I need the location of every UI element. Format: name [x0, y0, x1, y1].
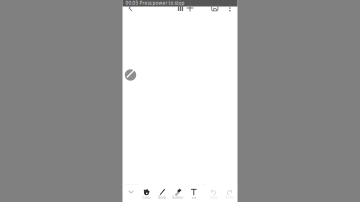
- staticText: Redo: [225, 196, 233, 199]
- button[interactable]: Undo: [206, 183, 221, 201]
- staticText: Undo: [209, 196, 217, 199]
- button[interactable]: Save: [208, 1, 222, 15]
- staticText: Brush: [158, 196, 166, 199]
- staticText: Rubber: [172, 196, 183, 199]
- button[interactable]: No colour: [122, 67, 138, 83]
- button[interactable]: Collapse toolbar: [125, 185, 137, 197]
- button[interactable]: Add layer: [183, 1, 197, 15]
- staticText: Color: [142, 196, 150, 199]
- button[interactable]: Brush: [155, 183, 170, 201]
- button[interactable]: Back: [123, 1, 137, 15]
- staticText: 00:05 Press power to stop: [125, 0, 184, 6]
- button[interactable]: Color: [139, 183, 154, 201]
- button[interactable]: Layers: [173, 1, 187, 15]
- staticText: Text: [191, 196, 196, 199]
- button[interactable]: More options: [223, 1, 237, 15]
- button[interactable]: Rubber: [170, 183, 185, 201]
- button[interactable]: Text: [186, 183, 201, 201]
- button[interactable]: Redo: [222, 183, 237, 201]
